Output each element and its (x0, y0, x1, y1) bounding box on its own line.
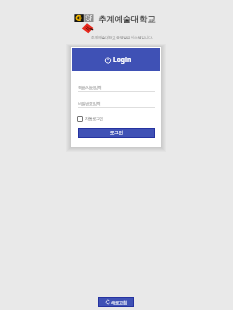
staticText: 새로고침 (111, 300, 127, 305)
staticText: 추계예술대학교 (98, 14, 156, 24)
button[interactable]: 비밀번호 입력 (78, 97, 155, 108)
staticText: Login (113, 55, 132, 64)
button[interactable]: 새로고침 (98, 297, 134, 307)
staticText: 자동로그인 (85, 116, 103, 121)
staticText: 학번/사번 입력 (78, 85, 101, 91)
staticText: 추계예술대학교 증명발급 시스템입니다. (91, 35, 153, 40)
staticText: 로그인 (110, 130, 123, 136)
button[interactable]: 자동로그인 (77, 114, 107, 123)
button[interactable]: 로그인 (78, 128, 155, 138)
staticText: 비밀번호 입력 (78, 101, 101, 107)
button[interactable]: 학번/사번 입력 (78, 81, 155, 92)
other: Chugye University for the Arts logo (74, 14, 94, 34)
